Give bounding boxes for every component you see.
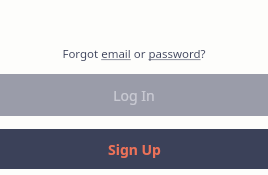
button[interactable]: Log In <box>0 74 268 116</box>
staticText: Log In <box>113 86 155 105</box>
staticText: Sign Up <box>108 140 161 159</box>
button[interactable]: Forgot email or password? <box>0 42 268 66</box>
button[interactable]: Sign Up <box>0 129 268 169</box>
staticText: Forgot email or password? <box>62 46 206 62</box>
